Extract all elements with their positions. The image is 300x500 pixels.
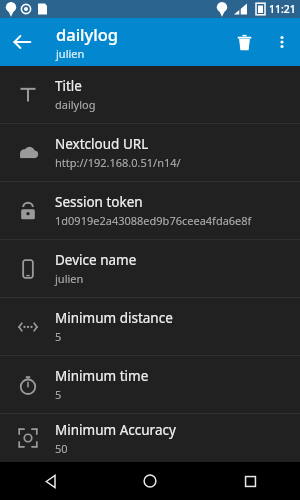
staticText: Nextcloud URL <box>55 135 149 153</box>
button[interactable]: Session token <box>0 182 300 239</box>
button[interactable]: Recent apps <box>200 462 300 500</box>
button[interactable]: More options <box>264 24 300 60</box>
button[interactable]: Delete <box>224 22 264 62</box>
button[interactable]: Back <box>0 462 100 500</box>
staticText: Session token <box>55 193 143 211</box>
staticText: 11:21 <box>269 2 296 16</box>
button[interactable]: Title <box>0 66 300 123</box>
button[interactable]: Navigate up <box>0 20 44 64</box>
staticText: Minimum distance <box>55 309 173 327</box>
staticText: 5 <box>55 329 62 344</box>
button[interactable]: Home <box>100 462 200 500</box>
staticText: Title <box>55 77 82 95</box>
staticText: http://192.168.0.51/n14/ <box>55 155 181 170</box>
staticText: Minimum time <box>55 367 149 385</box>
staticText: 5 <box>55 387 62 402</box>
button[interactable]: Minimum Accuracy <box>0 414 300 462</box>
button[interactable]: Device name <box>0 240 300 297</box>
button[interactable]: Minimum distance <box>0 298 300 355</box>
button[interactable]: Minimum time <box>0 356 300 413</box>
staticText: 50 <box>55 441 68 456</box>
staticText: julien <box>56 46 85 61</box>
staticText: dailylog <box>55 97 96 112</box>
staticText: 1d0919e2a43088ed9b76ceea4fda6e8f <box>55 213 252 228</box>
staticText: Minimum Accuracy <box>55 421 176 439</box>
staticText: dailylog <box>56 23 119 45</box>
staticText: Device name <box>55 251 137 269</box>
button[interactable]: Nextcloud URL <box>0 124 300 181</box>
staticText: julien <box>55 271 84 286</box>
